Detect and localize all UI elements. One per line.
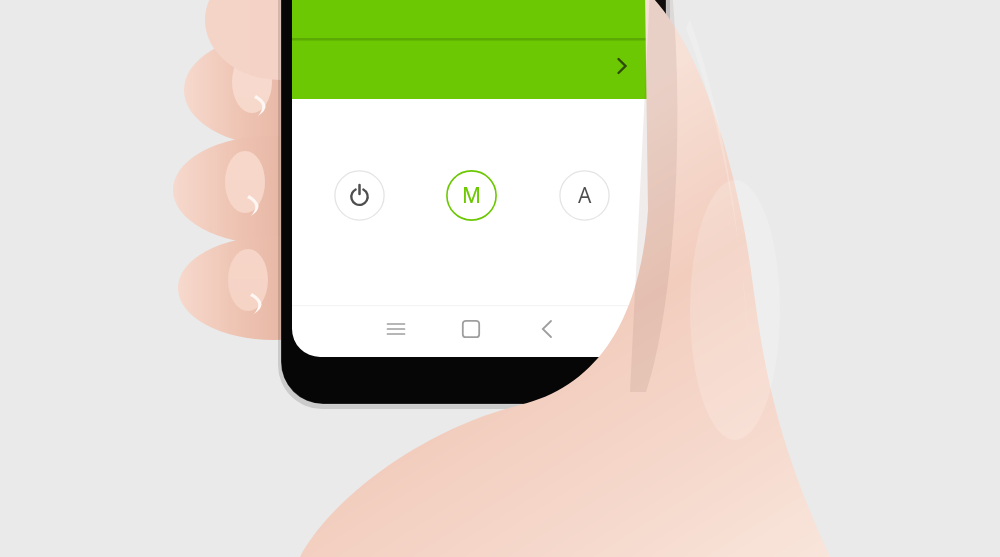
button[interactable]: Open details (600, 44, 644, 88)
button[interactable]: Recents (375, 314, 417, 344)
button[interactable]: Back (526, 314, 568, 344)
staticText: A (578, 181, 592, 210)
button[interactable]: Auto mode (559, 170, 610, 221)
button[interactable]: Power (334, 170, 385, 221)
button[interactable]: Home (450, 314, 492, 344)
staticText: M (462, 181, 482, 210)
button[interactable]: Manual mode (446, 170, 497, 221)
